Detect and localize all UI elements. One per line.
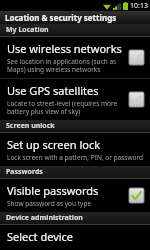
staticText: Passwords xyxy=(6,167,43,177)
button[interactable]: Select device administrators xyxy=(0,225,150,250)
other: Signal xyxy=(113,3,121,10)
staticText: Device administration xyxy=(6,213,83,223)
other: Wi-Fi xyxy=(103,3,111,10)
button[interactable]: Unchecked xyxy=(128,91,145,108)
staticText: My Location xyxy=(6,25,49,35)
button[interactable]: Unchecked xyxy=(128,49,145,66)
staticText: Screen unlock xyxy=(6,121,55,131)
button[interactable]: Checked xyxy=(128,187,145,204)
button[interactable]: Use wireless networks xyxy=(0,37,150,78)
staticText: Select device administrators xyxy=(7,229,145,246)
staticText: 10:13 xyxy=(130,1,148,11)
staticText: Visible passwords xyxy=(7,183,99,198)
staticText: Show password as you type xyxy=(7,199,92,208)
staticText: Use wireless networks xyxy=(7,41,122,56)
staticText: See location in applications (such as Ma… xyxy=(7,57,117,74)
staticText: Lock screen with a pattern, PIN, or pass… xyxy=(7,153,144,162)
button[interactable]: Use GPS satellites xyxy=(0,79,150,120)
staticText: Locate to street-level (requires more ba… xyxy=(7,99,118,116)
other: Battery xyxy=(123,2,128,10)
button[interactable]: Set up screen lock xyxy=(0,133,150,166)
staticText: Set up screen lock xyxy=(7,137,101,152)
staticText: Use GPS satellites xyxy=(7,83,99,98)
button[interactable]: Visible passwords xyxy=(0,179,150,212)
staticText: Location & security settings xyxy=(5,12,117,23)
